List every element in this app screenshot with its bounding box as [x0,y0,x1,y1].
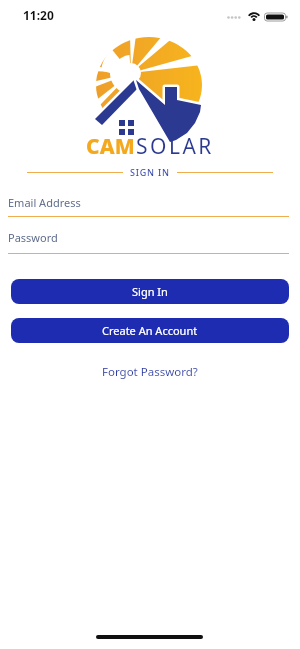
staticText: CAM [86,132,136,161]
staticText: SIGN IN [130,166,170,178]
button[interactable]: Create An Account [11,318,289,343]
button[interactable]: Forgot Password? [98,360,202,384]
staticText: 11:20 [23,7,54,23]
button[interactable]: Sign In [11,279,289,304]
staticText: Create An Account [102,323,198,338]
button[interactable]: Email Address [8,195,289,217]
button[interactable]: Password [8,230,289,254]
staticText: Email Address [8,195,81,210]
staticText: Sign In [132,284,168,299]
staticText: Password [8,230,58,245]
staticText: SOLAR [136,132,214,161]
